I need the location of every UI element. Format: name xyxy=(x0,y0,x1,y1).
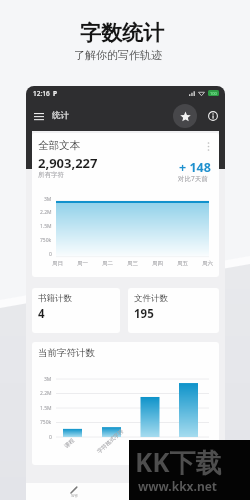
staticText: 字符格式字符 xyxy=(96,428,125,455)
button[interactable]: Favorite xyxy=(173,104,197,128)
staticText: 周三 xyxy=(127,260,138,267)
staticText: P xyxy=(53,89,58,98)
staticText: 字数统计 xyxy=(80,20,164,46)
staticText: www.kkx.net xyxy=(138,478,218,494)
staticText: 周一 xyxy=(77,260,88,267)
button[interactable]: 全部文本 xyxy=(32,133,219,277)
staticText: 0 xyxy=(49,434,52,441)
staticText: 2.2M xyxy=(40,390,52,397)
staticText: + 148 xyxy=(179,159,211,176)
staticText: 750k xyxy=(40,419,52,426)
staticText: 195 xyxy=(134,306,154,322)
button[interactable]: Info xyxy=(206,109,220,123)
staticText: 4 xyxy=(38,306,45,322)
staticText: 周四 xyxy=(152,260,163,267)
staticText: 周五 xyxy=(177,260,188,267)
staticText: 12:16 xyxy=(33,89,50,98)
staticText: 3M xyxy=(44,196,52,203)
staticText: KK下载 xyxy=(135,444,222,480)
staticText: 2,903,227 xyxy=(38,154,98,172)
staticText: 统计 xyxy=(52,110,69,121)
staticText: 写作 xyxy=(71,494,78,498)
staticText: 周六 xyxy=(202,260,213,267)
staticText: 周二 xyxy=(102,260,113,267)
staticText: 周日 xyxy=(52,260,63,267)
button[interactable]: More options xyxy=(202,140,214,152)
staticText: 了解你的写作轨迹 xyxy=(74,48,162,62)
staticText: 课程 xyxy=(63,437,76,450)
button[interactable]: Menu xyxy=(30,107,48,125)
staticText: 对比7天前 xyxy=(178,174,208,183)
button[interactable]: Write xyxy=(59,483,89,500)
staticText: 书籍计数 xyxy=(38,293,72,304)
staticText: 3M xyxy=(44,376,52,383)
staticText: 2.2M xyxy=(40,209,52,216)
staticText: 当前字符计数 xyxy=(38,347,95,359)
button[interactable]: 书籍计数 xyxy=(32,288,120,333)
staticText: 100 xyxy=(210,91,217,96)
staticText: 全部文本 xyxy=(38,139,80,152)
button[interactable]: 当前字符计数 xyxy=(32,342,219,465)
button[interactable]: Write xyxy=(158,483,188,500)
staticText: 1.5M xyxy=(40,405,52,412)
staticText: 750k xyxy=(40,237,52,244)
staticText: 所有字符 xyxy=(38,171,64,179)
staticText: 0 xyxy=(49,251,52,258)
staticText: 文件计数 xyxy=(134,293,168,304)
button[interactable]: 文件计数 xyxy=(128,288,219,333)
staticText: 1.5M xyxy=(40,223,52,230)
